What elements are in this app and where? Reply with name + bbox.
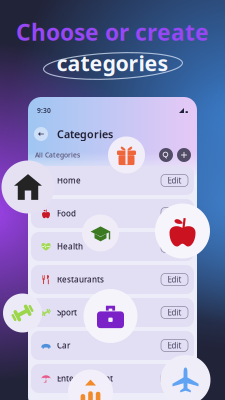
staticText: Edit xyxy=(167,340,181,351)
staticText: Restaurants xyxy=(57,274,104,285)
button[interactable]: Search xyxy=(159,148,173,162)
button[interactable]: Back xyxy=(34,127,48,141)
button[interactable]: Health xyxy=(31,232,194,261)
staticText: Choose or create xyxy=(16,17,209,47)
staticText: Edit xyxy=(167,241,181,252)
staticText: 9:30 xyxy=(37,106,51,115)
button[interactable]: Home xyxy=(31,166,194,195)
button[interactable]: Add category xyxy=(177,148,191,162)
button[interactable]: Entertainment xyxy=(31,364,194,393)
button[interactable]: Car xyxy=(31,331,194,360)
staticText: categories xyxy=(56,49,168,77)
button[interactable]: Food xyxy=(31,199,194,228)
button[interactable]: Sport xyxy=(31,298,194,327)
staticText: Edit xyxy=(167,373,181,384)
staticText: Entertainment xyxy=(57,373,113,384)
staticText: All Categories xyxy=(35,151,80,159)
staticText: Edit xyxy=(167,175,181,186)
staticText: Car xyxy=(57,340,70,351)
button[interactable]: Restaurants xyxy=(31,265,194,294)
staticText: Edit xyxy=(167,274,181,285)
staticText: Food xyxy=(57,208,76,219)
staticText: Home xyxy=(57,175,81,186)
staticText: Sport xyxy=(57,307,77,318)
staticText: Edit xyxy=(167,307,181,318)
staticText: Health xyxy=(57,241,83,252)
staticText: Categories xyxy=(57,127,113,141)
